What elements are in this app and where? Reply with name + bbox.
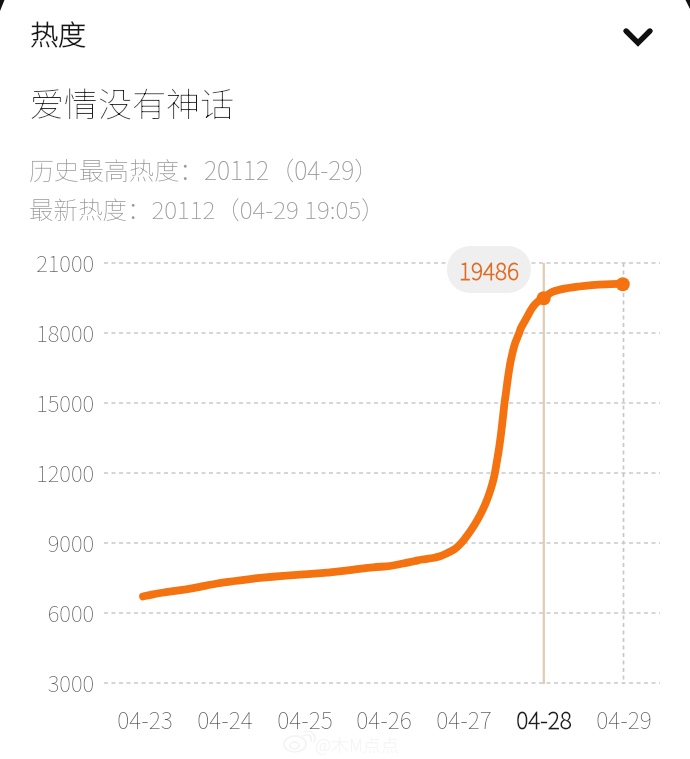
- button[interactable]: 04-29: [579, 702, 669, 735]
- staticText: 18000: [1, 316, 94, 348]
- staticText: 04-23: [100, 702, 190, 735]
- staticText: 15000: [1, 386, 94, 418]
- staticText: 12000: [1, 456, 94, 488]
- button[interactable]: 04-24: [180, 702, 270, 735]
- staticText: 9000: [1, 526, 94, 558]
- button[interactable]: 04-25: [260, 702, 350, 735]
- staticText: 历史最高热度：20112（04-29）: [29, 151, 380, 187]
- staticText: 最新热度：20112（04-29 19:05）: [29, 191, 386, 226]
- button[interactable]: 04-27: [419, 702, 509, 735]
- button[interactable]: Collapse chart: [611, 6, 665, 60]
- staticText: 19486: [459, 253, 519, 286]
- staticText: 热度: [30, 13, 87, 54]
- button[interactable]: 04-26: [339, 702, 429, 735]
- staticText: 04-28: [499, 702, 589, 735]
- staticText: 04-29: [579, 702, 669, 735]
- staticText: @木M点点: [315, 731, 399, 757]
- staticText: 04-27: [419, 702, 509, 735]
- staticText: 04-26: [339, 702, 429, 735]
- button[interactable]: 04-28: [499, 702, 589, 735]
- button[interactable]: 19486: [447, 246, 531, 293]
- staticText: 爱情没有神话: [30, 78, 234, 127]
- button[interactable]: 04-23: [100, 702, 190, 735]
- staticText: 6000: [1, 596, 94, 628]
- staticText: 04-25: [260, 702, 350, 735]
- staticText: 04-24: [180, 702, 270, 735]
- staticText: 3000: [1, 666, 94, 698]
- staticText: 21000: [1, 246, 94, 278]
